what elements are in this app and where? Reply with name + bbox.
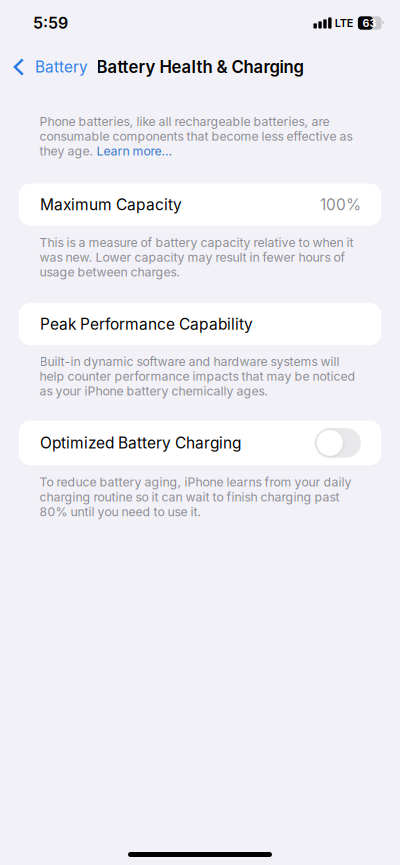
staticText: Optimized Battery Charging: [40, 433, 241, 452]
button[interactable]: Battery: [0, 46, 98, 88]
staticText: Built-in dynamic software and hardware s…: [39, 354, 355, 399]
staticText: Peak Performance Capability: [40, 315, 253, 333]
staticText: LTE: [335, 16, 354, 30]
staticText: 100%: [320, 195, 361, 214]
staticText: To reduce battery aging, iPhone learns f…: [39, 475, 351, 519]
staticText: Battery Health & Charging: [96, 57, 303, 77]
staticText: 63: [362, 16, 376, 29]
staticText: This is a measure of battery capacity re…: [39, 235, 353, 279]
button[interactable]: Optimized Battery Charging: [19, 421, 381, 465]
staticText: Battery: [35, 58, 88, 76]
staticText: 5:59: [33, 13, 68, 33]
button[interactable]: Maximum Capacity: [19, 183, 381, 225]
staticText: Phone batteries, like all rechargeable b…: [39, 114, 352, 158]
button[interactable]: Peak Performance Capability: [19, 303, 381, 345]
staticText: Maximum Capacity: [40, 195, 182, 214]
button[interactable]: Optimized Battery Charging: [315, 428, 361, 458]
